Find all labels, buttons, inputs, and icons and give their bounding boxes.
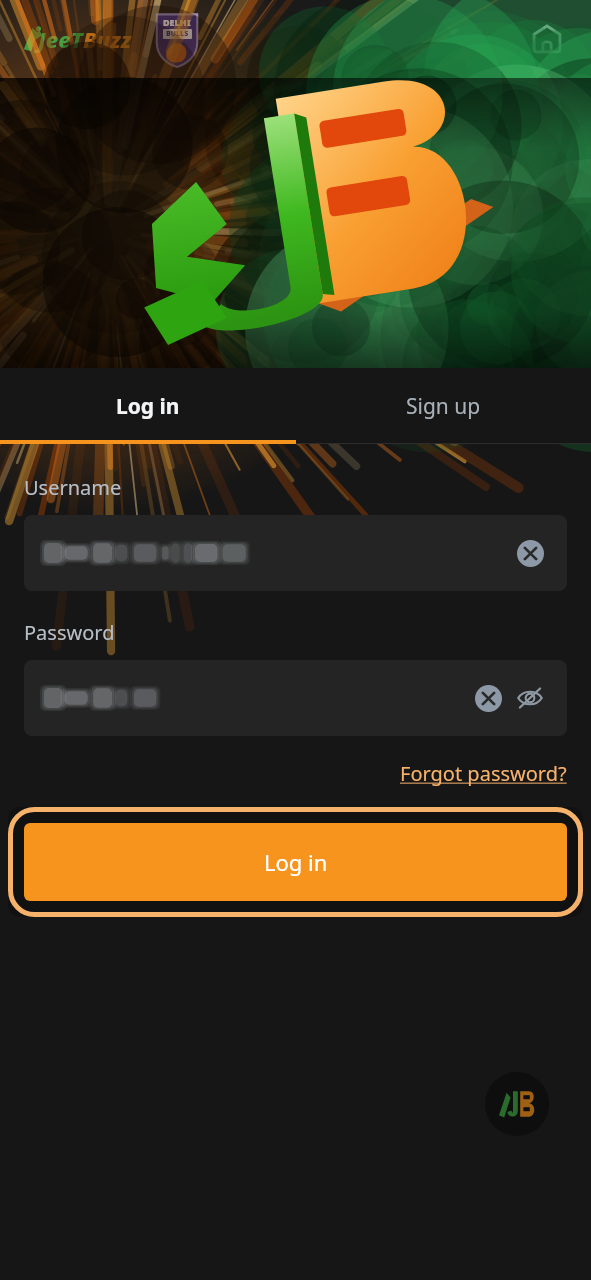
button[interactable]: Forgot password? [400, 756, 567, 791]
staticText: Log in [116, 392, 180, 421]
button[interactable]: Sign up [295, 368, 591, 444]
staticText: Username [24, 474, 122, 501]
staticText: JeeT [38, 24, 83, 54]
staticText: Sign up [406, 392, 481, 421]
other: Home [530, 22, 564, 56]
staticText: BULLS [166, 29, 189, 39]
staticText: Log in [264, 847, 328, 877]
staticText: Buzz [83, 24, 132, 54]
button[interactable]: Show password [513, 681, 547, 715]
button[interactable]: Clear text [24, 515, 567, 591]
button[interactable]: JeetBuzz support [485, 1072, 549, 1136]
button[interactable]: Log in [8, 807, 583, 917]
button[interactable]: Home [523, 15, 571, 63]
button[interactable]: Log in [0, 368, 295, 444]
staticText: Password [24, 619, 115, 646]
button[interactable]: Clear text [513, 536, 547, 570]
staticText: DELHI [163, 16, 191, 28]
button[interactable]: Clear text [24, 660, 567, 736]
button[interactable]: Clear text [471, 681, 505, 715]
staticText: Forgot password? [400, 760, 567, 787]
